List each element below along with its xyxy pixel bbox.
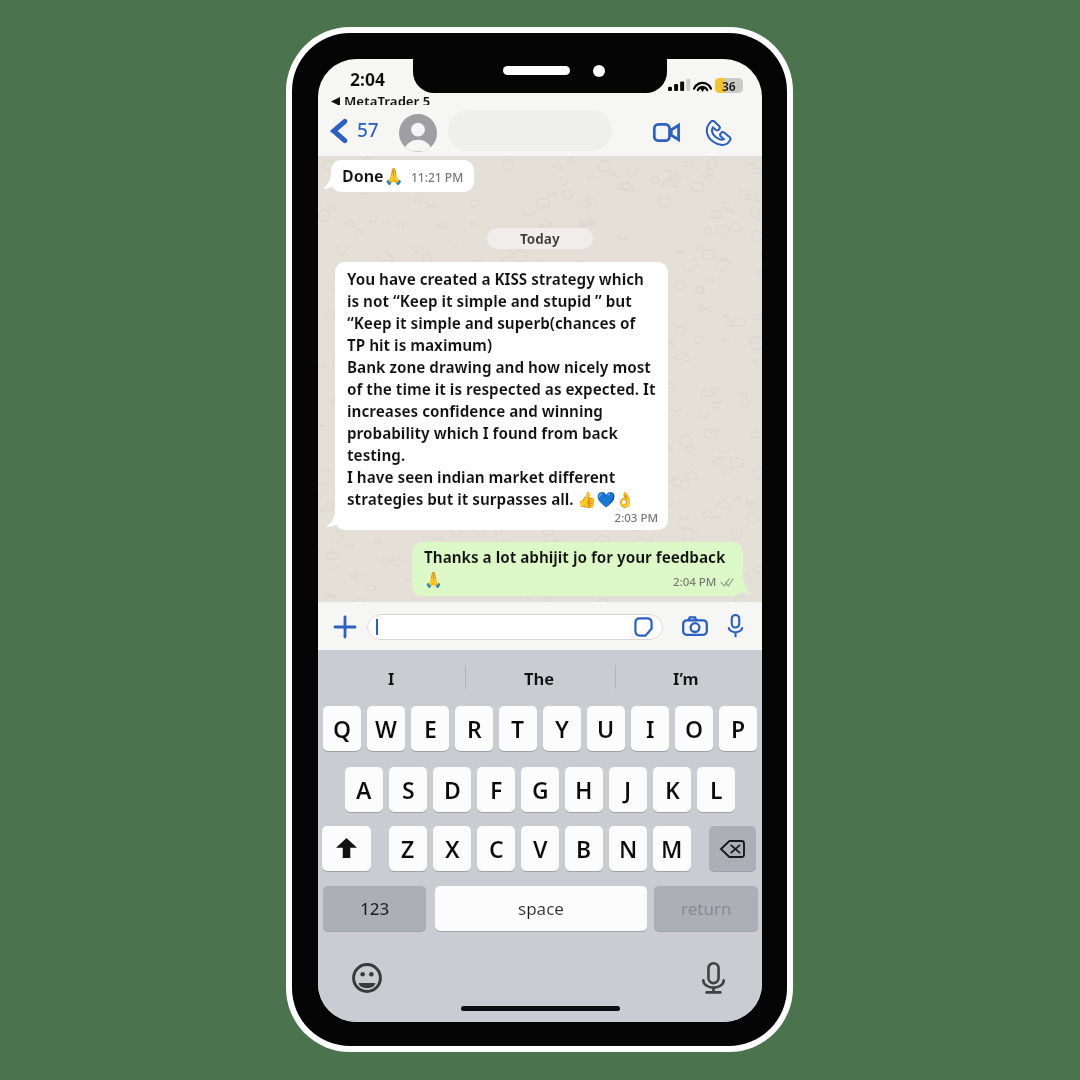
button[interactable]: R <box>455 706 493 751</box>
button[interactable]: Dictation <box>702 962 725 994</box>
staticText: You have created a KISS strategy which i… <box>347 269 656 510</box>
staticText: I <box>646 713 655 744</box>
button[interactable]: Voice message <box>727 614 744 638</box>
button[interactable]: space <box>435 886 647 931</box>
button[interactable]: P <box>719 706 757 751</box>
button[interactable]: Camera <box>682 616 708 636</box>
staticText: D <box>444 774 461 805</box>
button[interactable]: G <box>521 767 559 812</box>
staticText: 11:21 PM <box>411 169 464 185</box>
staticText: E <box>424 713 437 744</box>
button[interactable]: O <box>675 706 713 751</box>
staticText: The <box>524 667 555 689</box>
button[interactable]: M <box>653 826 691 871</box>
staticText: P <box>731 713 746 744</box>
button[interactable]: A <box>345 767 383 812</box>
staticText: X <box>445 833 460 864</box>
button[interactable]: F <box>477 767 515 812</box>
staticText: G <box>532 774 549 805</box>
button[interactable]: Q <box>323 706 361 751</box>
button[interactable]: I <box>631 706 669 751</box>
staticText: Done🙏 <box>342 165 404 187</box>
button[interactable]: B <box>565 826 603 871</box>
button[interactable]: J <box>609 767 647 812</box>
button[interactable]: return <box>654 886 758 931</box>
staticText: Q <box>333 713 352 744</box>
staticText: 2:04 PM <box>673 574 717 590</box>
staticText: S <box>402 774 415 805</box>
button[interactable]: N <box>609 826 647 871</box>
staticText: J <box>624 774 632 805</box>
staticText: T <box>511 713 525 744</box>
staticText: Thanks a lot abhijit jo for your feedbac… <box>424 547 726 589</box>
staticText: 36 <box>722 78 736 93</box>
button[interactable]: L <box>697 767 735 812</box>
button[interactable]: Attach <box>335 617 355 637</box>
button[interactable]: Contact profile photo <box>399 114 437 152</box>
button[interactable]: Backspace <box>709 826 756 871</box>
button[interactable]: Z <box>389 826 427 871</box>
staticText: R <box>467 713 482 744</box>
button[interactable]: U <box>587 706 625 751</box>
staticText: B <box>576 833 592 864</box>
staticText: MetaTrader 5 <box>344 92 431 110</box>
button[interactable]: 123 <box>323 886 426 931</box>
staticText: 2:04 <box>350 67 385 91</box>
staticText: I’m <box>673 667 699 689</box>
staticText: return <box>681 897 732 920</box>
staticText: space <box>518 897 564 920</box>
button[interactable]: Voice call <box>707 121 729 144</box>
staticText: 2:03 PM <box>347 510 658 526</box>
button[interactable]: C <box>477 826 515 871</box>
staticText: Y <box>555 713 569 744</box>
button[interactable]: H <box>565 767 603 812</box>
staticText: A <box>356 774 372 805</box>
staticText: W <box>375 713 397 744</box>
button[interactable]: E <box>411 706 449 751</box>
button[interactable]: Stickers <box>634 617 653 637</box>
staticText: N <box>619 833 638 864</box>
staticText: U <box>597 713 615 744</box>
button[interactable]: V <box>521 826 559 871</box>
staticText: K <box>665 774 680 805</box>
button[interactable]: W <box>367 706 405 751</box>
button[interactable] <box>367 614 663 640</box>
button[interactable]: S <box>389 767 427 812</box>
staticText: F <box>490 774 503 805</box>
button[interactable]: T <box>499 706 537 751</box>
staticText: H <box>575 774 593 805</box>
staticText: 123 <box>360 897 390 920</box>
staticText: Z <box>401 833 415 864</box>
staticText: L <box>710 774 723 805</box>
button[interactable]: X <box>433 826 471 871</box>
staticText: Today <box>520 230 560 248</box>
staticText: I <box>388 667 395 689</box>
button[interactable]: Shift <box>322 826 371 871</box>
staticText: V <box>533 833 548 864</box>
button[interactable]: Back to chats, 57 unread <box>332 116 379 146</box>
staticText: 57 <box>357 117 379 143</box>
button[interactable]: Emoji <box>352 963 382 993</box>
staticText: O <box>685 713 704 744</box>
button[interactable]: Y <box>543 706 581 751</box>
button[interactable]: K <box>653 767 691 812</box>
button[interactable]: D <box>433 767 471 812</box>
staticText: M <box>661 833 683 864</box>
button[interactable]: Video call <box>653 123 680 142</box>
staticText: C <box>489 833 504 864</box>
